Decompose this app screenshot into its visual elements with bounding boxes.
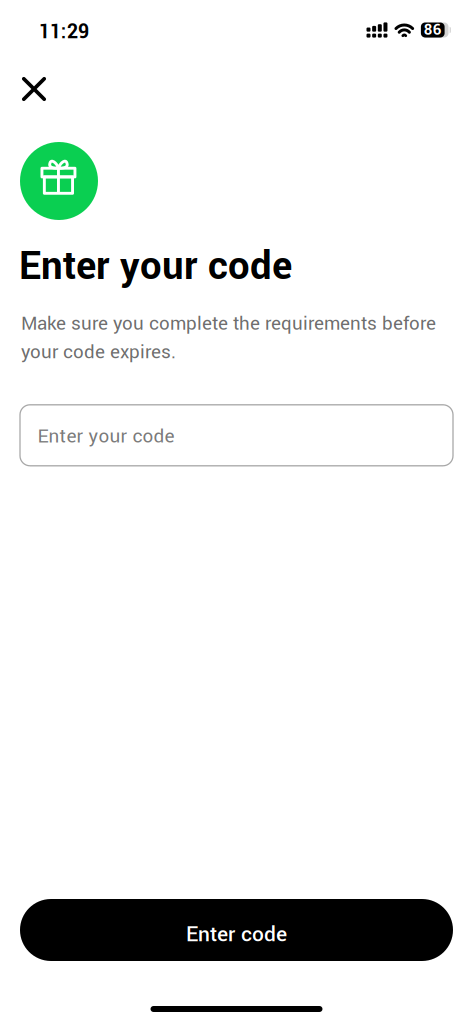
- staticText: 11:29: [39, 18, 89, 46]
- button[interactable]: Close: [0, 65, 62, 113]
- button[interactable]: Enter your code: [20, 405, 453, 466]
- staticText: Enter code: [186, 919, 287, 950]
- button[interactable]: Enter code: [20, 899, 453, 961]
- staticText: Enter your code: [37, 423, 174, 450]
- staticText: Enter your code: [19, 239, 292, 294]
- staticText: 86: [424, 19, 442, 41]
- staticText: Make sure you complete the requirements …: [21, 310, 436, 366]
